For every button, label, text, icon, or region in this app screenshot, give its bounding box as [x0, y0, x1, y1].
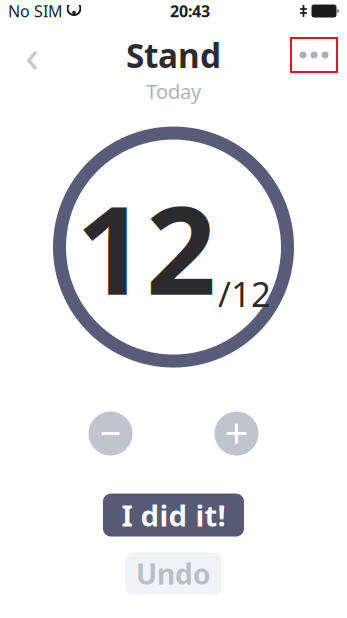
staticText: ‹ — [25, 25, 39, 85]
staticText: I did it! — [121, 496, 225, 535]
staticText: /12 — [218, 270, 271, 316]
button[interactable]: Decrease count — [88, 412, 132, 456]
staticText: 12 — [76, 166, 216, 328]
staticText: No SIM — [8, 0, 63, 22]
button[interactable]: Undo — [125, 553, 221, 595]
staticText: Undo — [136, 555, 211, 592]
button[interactable]: Back — [10, 35, 54, 75]
button[interactable]: More options — [291, 38, 337, 72]
staticText: 20:43 — [170, 0, 210, 22]
button[interactable]: I did it! — [103, 494, 244, 537]
staticText: Today — [146, 78, 201, 105]
staticText — [308, 0, 312, 22]
staticText: Stand — [126, 33, 221, 77]
button[interactable]: Increase count — [214, 412, 258, 456]
